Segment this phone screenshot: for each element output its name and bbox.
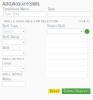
button[interactable]: Submit Request [62, 88, 90, 94]
staticText: SKILL DETAILS [2, 57, 24, 60]
staticText: Level [2, 62, 11, 65]
staticText: Select Skill [47, 24, 65, 28]
staticText: Add/Acquire Skills [2, 1, 39, 7]
staticText: SKILLS AVAILABLE FOR SELECTION [4, 20, 58, 23]
button[interactable]: Add skill [85, 29, 89, 34]
staticText: Skill [2, 46, 9, 50]
staticText: Submit Request [64, 89, 89, 93]
staticText: Select [3, 29, 13, 33]
staticText: SKILL NOTES [2, 73, 22, 76]
staticText: Skill Group [2, 35, 19, 39]
staticText: Reset [50, 89, 59, 93]
staticText: Notes [2, 77, 11, 81]
staticText: Skill Type [2, 24, 18, 28]
staticText: Clear All [78, 20, 90, 23]
staticText: Employee Name [3, 7, 29, 11]
staticText: Tom Ellis [4, 12, 19, 16]
button[interactable]: Reset [48, 89, 60, 93]
staticText: Date [48, 7, 55, 11]
